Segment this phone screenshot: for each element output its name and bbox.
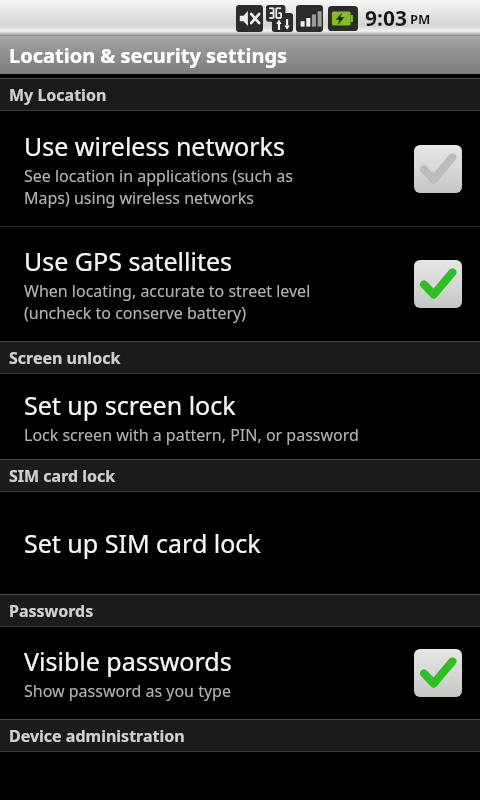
staticText: Lock screen with a pattern, PIN, or pass… [24,424,359,446]
other: 3G data connection [266,5,293,32]
staticText: 9:03 [365,4,407,33]
staticText: Maps) using wireless networks [24,187,254,209]
button[interactable]: Visible passwords [0,627,480,719]
staticText: Use wireless networks [24,129,285,163]
button[interactable]: Set up SIM card lock [0,492,480,594]
button[interactable]: Use wireless networks [0,111,480,226]
button[interactable]: Use GPS satellites [0,227,480,341]
staticText: Location & security settings [9,42,288,69]
button[interactable]: Set up screen lock [0,374,480,459]
staticText: Device administration [9,725,185,747]
button[interactable]: Checked [414,649,462,697]
staticText: (uncheck to conserve battery) [24,302,246,324]
button[interactable]: Checked [414,260,462,308]
staticText: When locating, accurate to street level [24,280,311,302]
staticText: SIM card lock [9,465,116,487]
staticText: PM [410,10,431,28]
staticText: My Location [9,84,107,106]
staticText: Use GPS satellites [24,244,232,278]
other: Silent mode [236,5,263,32]
button[interactable]: Unchecked [414,145,462,193]
staticText: Set up SIM card lock [24,526,261,560]
staticText: Passwords [9,600,94,622]
staticText: Screen unlock [9,347,121,369]
staticText: See location in applications (such as [24,165,293,187]
other: Signal strength [296,5,323,32]
staticText: Show password as you type [24,680,231,702]
staticText: Visible passwords [24,644,232,678]
staticText: Set up screen lock [24,388,236,422]
other: Battery charging [328,6,358,31]
